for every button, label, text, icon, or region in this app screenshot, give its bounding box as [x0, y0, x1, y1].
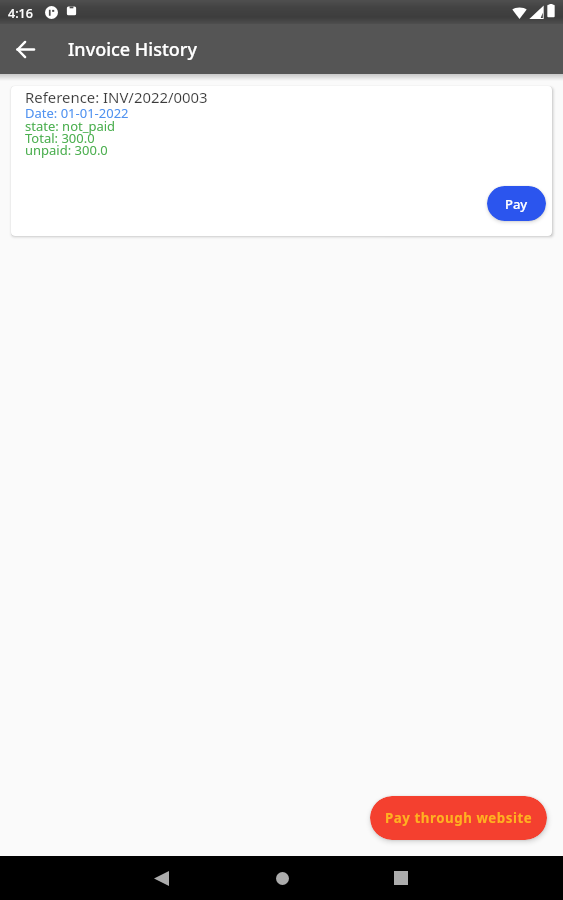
button[interactable]: Pay — [487, 186, 546, 221]
staticText: Pay — [505, 195, 528, 213]
button[interactable]: Reference: INV/2022/0003 — [11, 86, 552, 236]
staticText: Pay through website — [385, 809, 533, 827]
staticText: Invoice History — [68, 37, 197, 62]
staticText: Date: 01-01-2022 — [25, 104, 129, 122]
staticText: 4:16 — [8, 5, 33, 22]
staticText: state: not_paid — [25, 117, 116, 135]
staticText: Reference: INV/2022/0003 — [25, 87, 208, 107]
staticText: Total: 300.0 — [25, 129, 95, 147]
staticText: unpaid: 300.0 — [25, 141, 108, 159]
button[interactable]: Back — [3, 27, 47, 71]
button[interactable]: Recent apps — [377, 856, 425, 900]
button[interactable]: Pay through website — [370, 796, 547, 840]
button[interactable]: Home — [258, 856, 306, 900]
button[interactable]: Back — [137, 856, 185, 900]
